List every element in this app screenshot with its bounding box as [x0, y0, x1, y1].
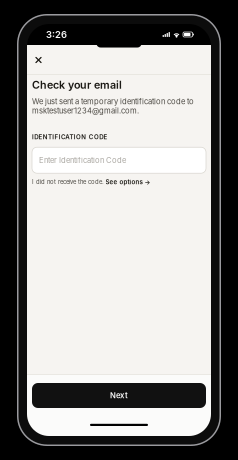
button[interactable]: Next: [32, 383, 206, 408]
staticText: We just sent a temporary identification …: [32, 97, 194, 106]
staticText: Enter Identification Code: [39, 156, 126, 165]
button[interactable]: I did not receive the code.: [32, 178, 151, 186]
staticText: msktestuser1234@gmail.com.: [32, 106, 139, 115]
staticText: Next: [110, 391, 128, 400]
staticText: IDENTIFICATION CODE: [32, 133, 107, 141]
staticText: I did not receive the code.: [32, 178, 104, 185]
staticText: See options →: [106, 178, 151, 186]
staticText: 3:26: [46, 29, 67, 40]
button[interactable]: Close: [30, 51, 47, 68]
staticText: Check your email: [32, 78, 122, 91]
